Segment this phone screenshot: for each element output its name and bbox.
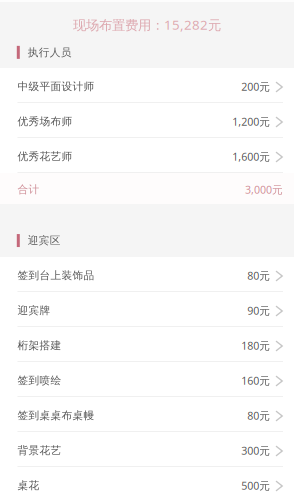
- staticText: 500元: [241, 478, 270, 493]
- button[interactable]: 签到台上装饰品: [0, 257, 294, 291]
- staticText: 桌花: [17, 479, 39, 492]
- staticText: 中级平面设计师: [17, 80, 94, 93]
- staticText: 签到台上装饰品: [17, 269, 94, 282]
- button[interactable]: 签到桌桌布桌幔: [0, 397, 294, 431]
- button[interactable]: 背景花艺: [0, 432, 294, 466]
- button[interactable]: 桌花: [0, 467, 294, 500]
- button[interactable]: 中级平面设计师: [0, 68, 294, 102]
- staticText: 桁架搭建: [17, 339, 61, 352]
- staticText: 1,600元: [232, 149, 270, 164]
- button[interactable]: 桁架搭建: [0, 327, 294, 361]
- staticText: 300元: [241, 443, 270, 458]
- button[interactable]: 迎宾牌: [0, 292, 294, 326]
- staticText: 180元: [241, 338, 270, 353]
- staticText: 迎宾牌: [17, 304, 50, 317]
- staticText: 执行人员: [28, 46, 72, 59]
- button[interactable]: 优秀场布师: [0, 103, 294, 137]
- staticText: 80元: [247, 268, 270, 283]
- staticText: 160元: [241, 373, 270, 388]
- staticText: 迎宾区: [28, 234, 61, 247]
- staticText: 优秀花艺师: [17, 150, 72, 163]
- staticText: 90元: [247, 303, 270, 318]
- staticText: 优秀场布师: [17, 115, 72, 128]
- staticText: 80元: [247, 408, 270, 423]
- staticText: 签到桌桌布桌幔: [17, 409, 94, 422]
- staticText: 背景花艺: [17, 444, 61, 457]
- staticText: 签到喷绘: [17, 374, 61, 387]
- staticText: 现场布置费用：15,282元: [73, 16, 221, 33]
- staticText: 200元: [241, 79, 270, 94]
- staticText: 合计: [17, 183, 39, 196]
- button[interactable]: 签到喷绘: [0, 362, 294, 396]
- staticText: 3,000元: [245, 182, 283, 197]
- staticText: 1,200元: [232, 114, 270, 129]
- button[interactable]: 优秀花艺师: [0, 138, 294, 172]
